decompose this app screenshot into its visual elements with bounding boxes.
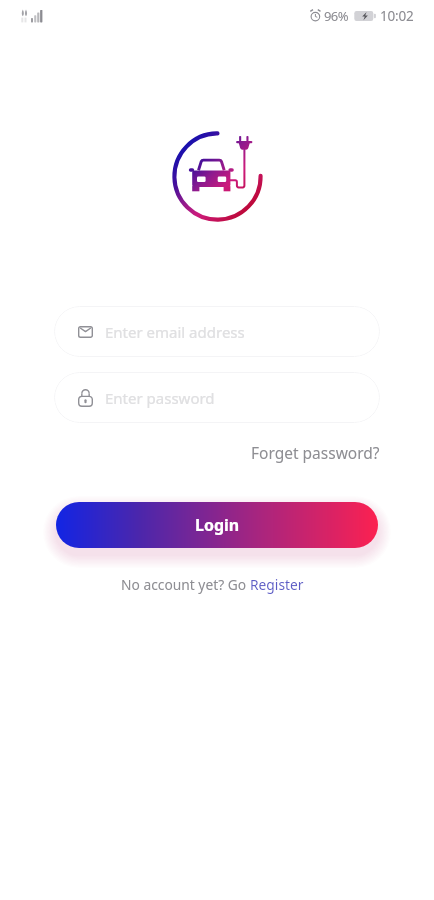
staticText: 96% bbox=[324, 7, 348, 25]
staticText: Register bbox=[250, 575, 304, 594]
staticText: Enter password bbox=[105, 388, 215, 408]
staticText: Login bbox=[195, 514, 240, 536]
staticText: No account yet? Go bbox=[121, 575, 250, 594]
button[interactable]: Enter email address bbox=[54, 306, 380, 357]
button[interactable]: Register bbox=[250, 575, 304, 594]
button[interactable]: Enter password bbox=[54, 372, 380, 423]
staticText: Enter email address bbox=[105, 322, 245, 342]
button[interactable]: Login bbox=[56, 502, 378, 548]
staticText: Forget password? bbox=[251, 442, 380, 463]
staticText: 10:02 bbox=[380, 7, 414, 25]
button[interactable]: Forget password? bbox=[243, 437, 388, 468]
